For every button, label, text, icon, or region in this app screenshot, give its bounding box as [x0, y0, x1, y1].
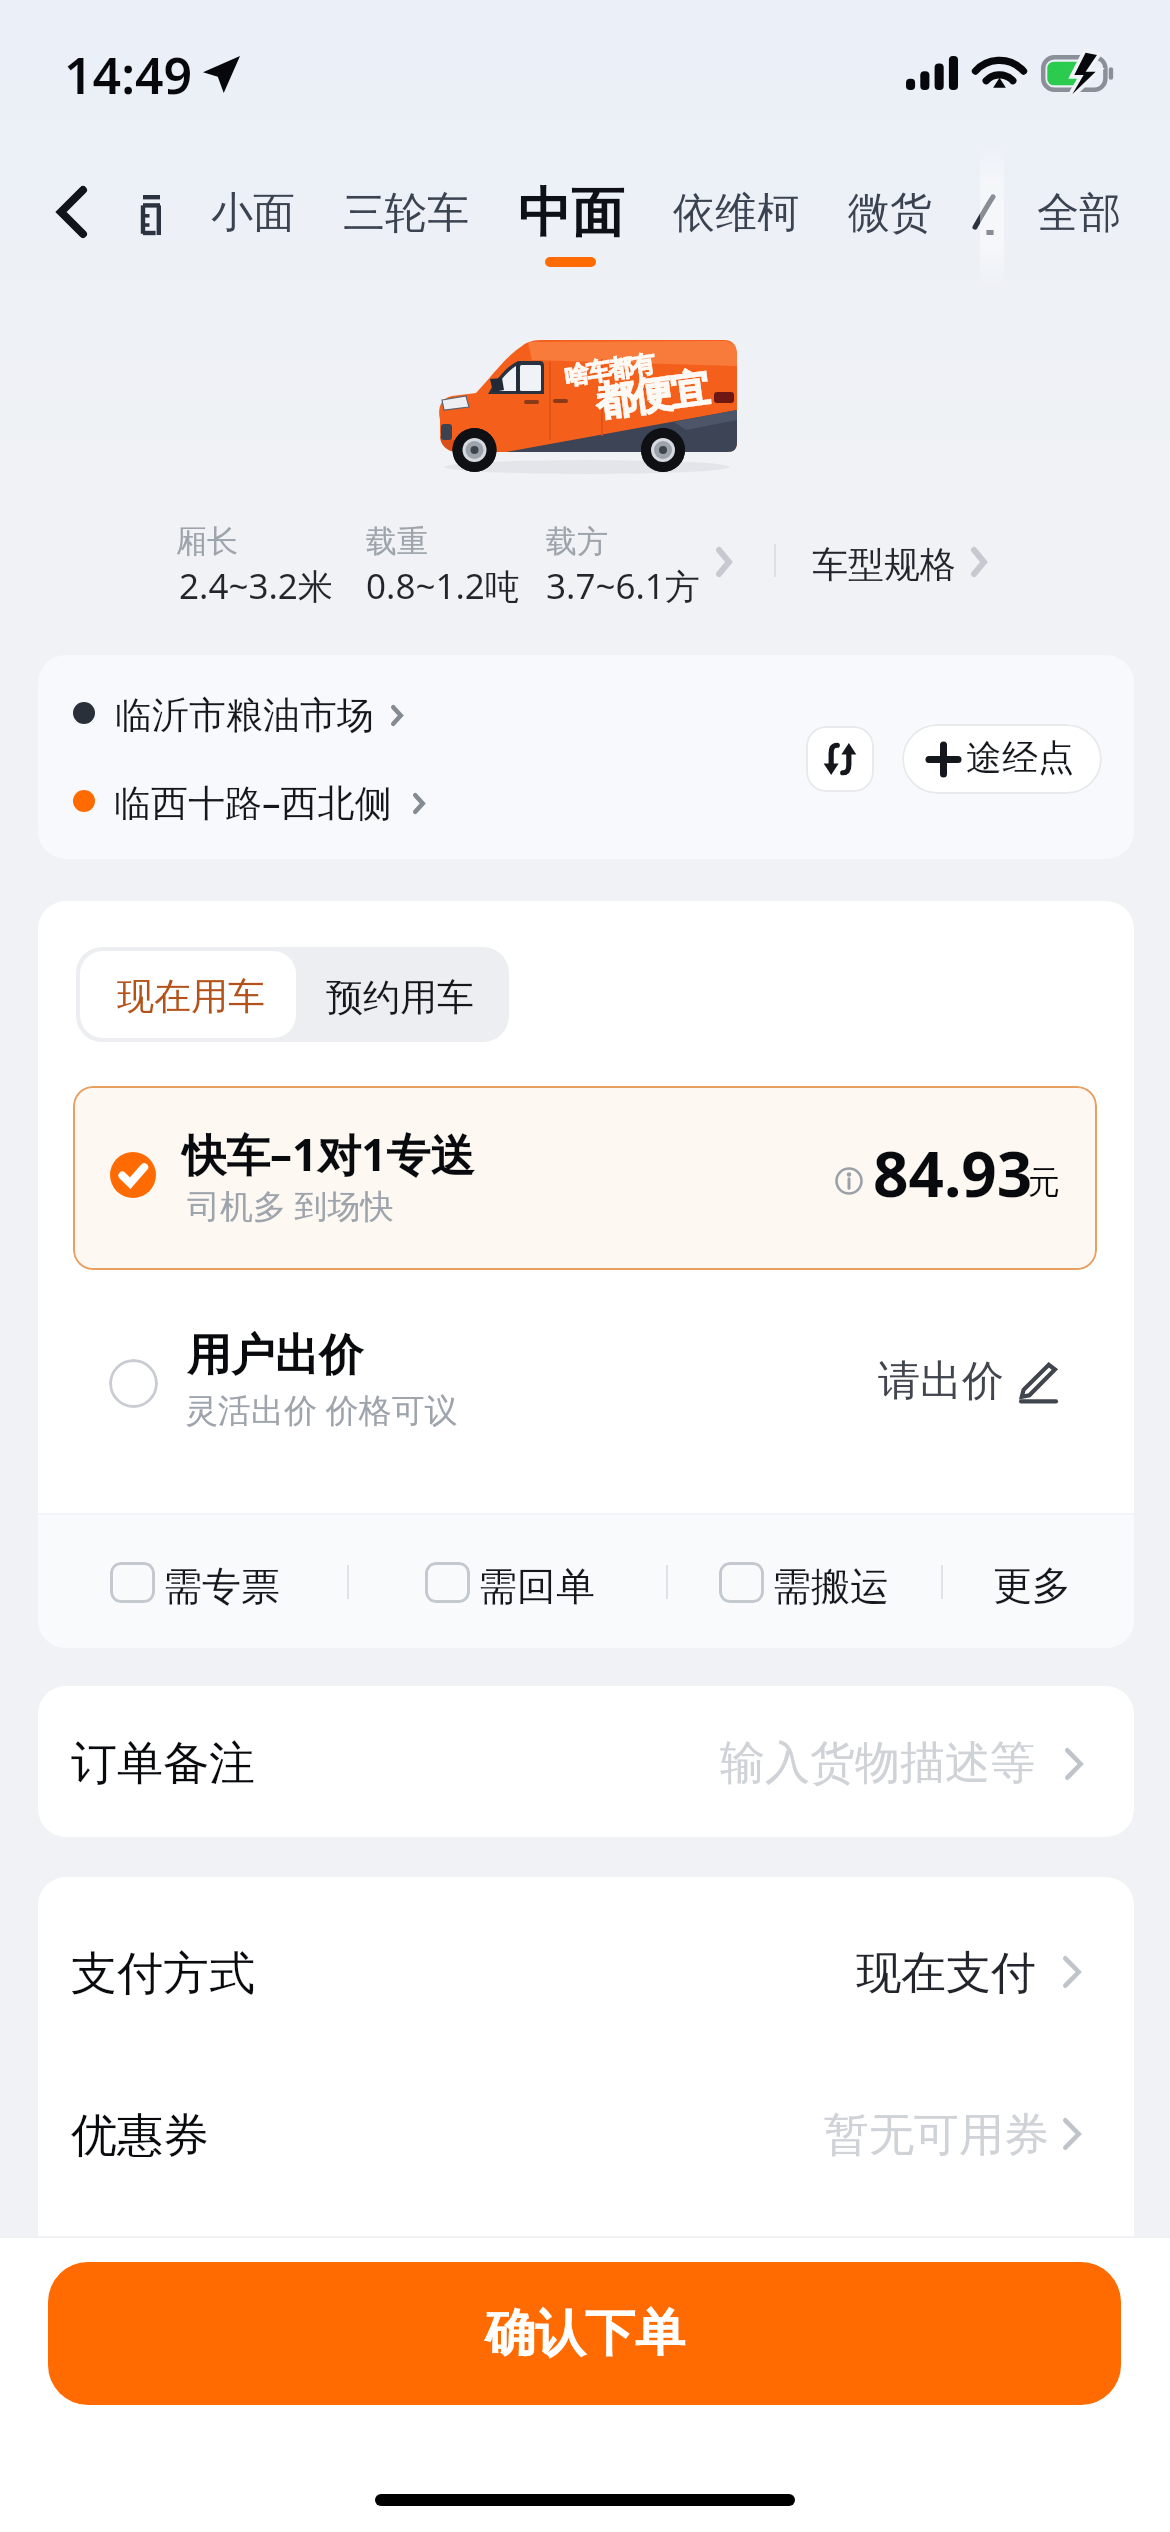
- staticText: 需回单: [478, 1562, 595, 1611]
- button[interactable]: 订单备注: [38, 1686, 1134, 1837]
- button[interactable]: 临沂市粮油市场: [68, 677, 488, 749]
- staticText: 预约用车: [326, 974, 474, 1021]
- staticText: 啥车都有: [563, 348, 656, 392]
- staticText: 临西十路–西北侧: [114, 776, 392, 827]
- button[interactable]: 支付方式: [38, 1893, 1134, 2055]
- staticText: 司机多 到场快: [187, 1183, 394, 1228]
- button[interactable]: 车型规格: [798, 527, 998, 593]
- button[interactable]: 小面: [186, 143, 322, 249]
- staticText: 灵活出价 价格可议: [185, 1387, 458, 1432]
- staticText: 载重: [366, 522, 428, 561]
- staticText: 输入货物描述等: [720, 1735, 1035, 1792]
- staticText: 确认下单: [485, 2302, 685, 2365]
- staticText: 三轮车: [343, 187, 469, 240]
- button[interactable]: Back: [29, 168, 115, 256]
- staticText: 请出价: [878, 1355, 1004, 1408]
- button[interactable]: 临西十路–西北侧: [68, 765, 508, 837]
- button[interactable]: 预约用车: [296, 951, 509, 1038]
- staticText: 需搬运: [772, 1562, 889, 1611]
- button[interactable]: Vehicle dimensions: [150, 508, 756, 604]
- button[interactable]: 用户出价: [38, 1301, 1134, 1449]
- button[interactable]: 快车–1对1专送: [73, 1086, 1097, 1270]
- staticText: 都便宜: [593, 363, 711, 427]
- button[interactable]: 三轮车: [318, 143, 496, 249]
- button[interactable]: 中面: [494, 152, 646, 278]
- staticText: 载方: [546, 522, 608, 561]
- button[interactable]: 更多: [974, 1531, 1092, 1631]
- staticText: 车型规格: [812, 542, 956, 587]
- staticText: 快车–1对1专送: [182, 1124, 475, 1184]
- staticText: 优惠券: [71, 2107, 209, 2165]
- staticText: 更多: [993, 1561, 1071, 1610]
- staticText: 用户出价: [187, 1328, 363, 1383]
- staticText: 现在用车: [117, 973, 265, 1020]
- button[interactable]: 需专票: [96, 1547, 299, 1621]
- button[interactable]: Swap pickup and drop-off: [806, 726, 874, 792]
- button[interactable]: 现在用车: [80, 951, 296, 1038]
- staticText: 3.7~6.1方: [546, 562, 700, 610]
- staticText: 暂无可用券: [824, 2107, 1049, 2164]
- button[interactable]: 微货: [823, 143, 959, 249]
- staticText: 全部: [1037, 187, 1121, 240]
- staticText: 订单备注: [71, 1735, 255, 1793]
- button[interactable]: 需回单: [411, 1547, 614, 1621]
- button[interactable]: 途经点: [902, 724, 1102, 794]
- staticText: 小面: [211, 187, 295, 240]
- staticText: 现在支付: [856, 1945, 1036, 2002]
- staticText: 厢长: [176, 522, 238, 561]
- staticText: 需专票: [163, 1562, 280, 1611]
- staticText: 微货: [848, 187, 932, 240]
- staticText: 84.93: [873, 1131, 1033, 1215]
- button[interactable]: 需搬运: [705, 1547, 908, 1621]
- staticText: 途经点: [966, 735, 1074, 780]
- button[interactable]: 依维柯: [648, 143, 826, 249]
- staticText: 0.8~1.2吨: [366, 562, 520, 610]
- button[interactable]: 确认下单: [48, 2262, 1121, 2405]
- staticText: 元: [1028, 1162, 1060, 1202]
- button[interactable]: 全部: [1012, 143, 1148, 249]
- staticText: 2.4~3.2米: [179, 562, 333, 610]
- staticText: 支付方式: [71, 1945, 255, 2003]
- staticText: 中面: [518, 180, 624, 247]
- staticText: 临沂市粮油市场: [115, 692, 374, 739]
- staticText: 依维柯: [673, 187, 799, 240]
- staticText: 14:49: [64, 41, 193, 109]
- button[interactable]: 优惠券: [38, 2055, 1134, 2217]
